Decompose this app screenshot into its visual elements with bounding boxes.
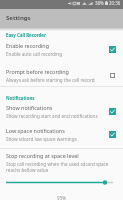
staticText: 20:36 [109, 0, 121, 6]
button[interactable]: Show notifications [0, 101, 123, 121]
staticText: Show notifications [6, 104, 53, 111]
staticText: Low space notifications [6, 127, 65, 134]
button[interactable]: Toggle setting [106, 105, 118, 117]
button[interactable]: Prompt before recording [0, 65, 123, 85]
button[interactable]: Low space notifications [0, 124, 123, 144]
staticText: 38% [95, 0, 104, 6]
button[interactable]: Toggle setting [106, 128, 118, 140]
staticText: Prompt before recording [6, 68, 69, 75]
button[interactable]: Stop recording at space level [0, 152, 123, 200]
staticText: Always ask before starting the call reco… [6, 77, 95, 83]
staticText: Settings [6, 14, 31, 22]
staticText: Stop call recording when the used sdcard… [6, 161, 118, 173]
staticText: Notifications [6, 95, 35, 101]
staticText: Show recording start and end notificatio… [6, 113, 98, 119]
button[interactable]: Toggle setting [106, 43, 118, 55]
staticText: Enable auto call recording [6, 51, 63, 57]
staticText: Enable recording [6, 42, 49, 49]
staticText: Show sdcard low space warnings [6, 136, 77, 142]
button[interactable]: Toggle setting [106, 69, 118, 81]
staticText: 95% [57, 195, 67, 200]
staticText: Easy Call Recorder [6, 32, 46, 38]
staticText: Stop recording at space level [6, 152, 79, 159]
button[interactable]: Enable recording [0, 39, 123, 59]
